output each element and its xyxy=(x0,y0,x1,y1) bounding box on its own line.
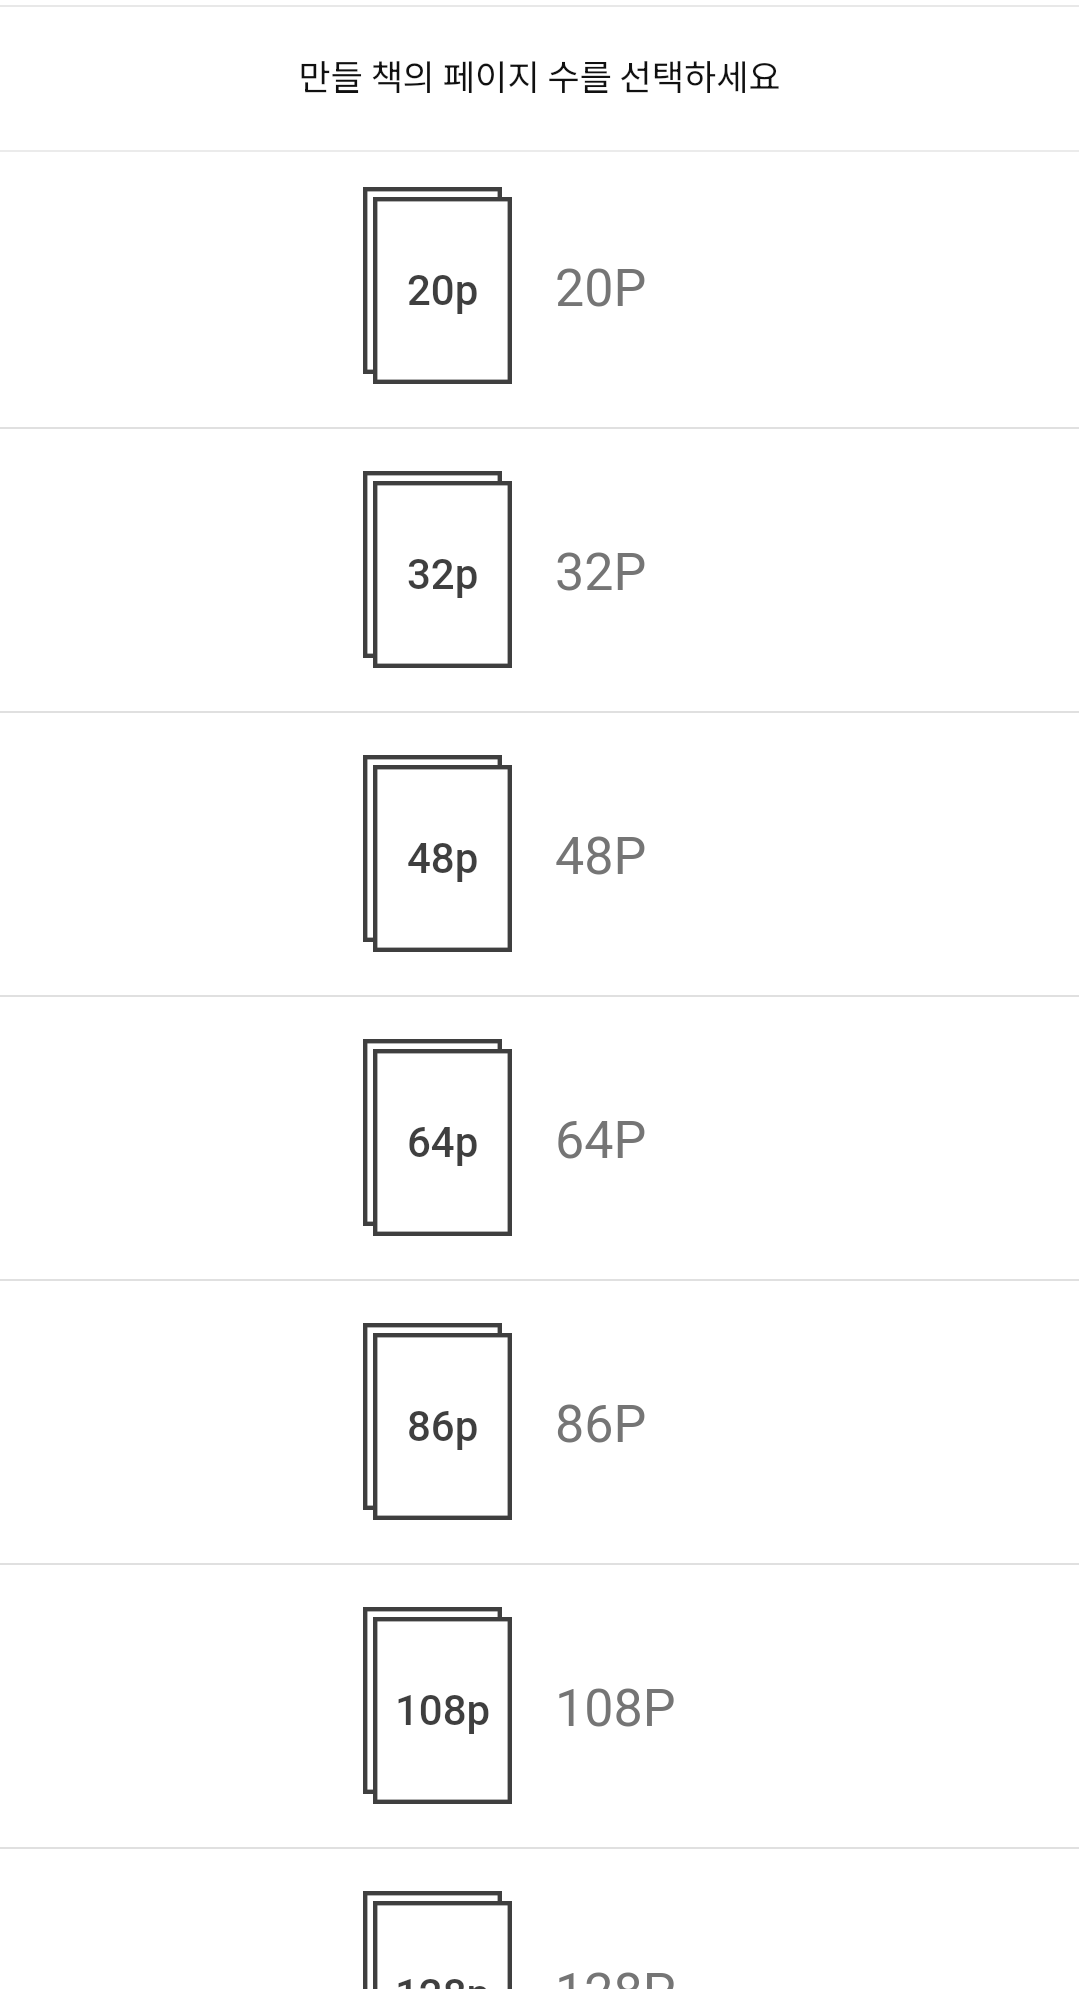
button[interactable]: 64페이지 책 선택 xyxy=(0,997,1079,1279)
button[interactable]: 48페이지 책 선택 xyxy=(0,713,1079,995)
button[interactable]: 32페이지 책 선택 xyxy=(0,429,1079,711)
staticText: 108P xyxy=(555,1678,676,1739)
staticText: 108p xyxy=(395,1686,491,1735)
staticText: 86P xyxy=(555,1394,647,1455)
button[interactable]: 86페이지 책 선택 xyxy=(0,1281,1079,1563)
staticText: 32P xyxy=(555,542,647,603)
staticText: 20p xyxy=(407,266,479,315)
staticText: 20P xyxy=(555,258,647,319)
button[interactable]: 128페이지 책 선택 xyxy=(0,1849,1079,1989)
staticText: 86p xyxy=(407,1402,479,1451)
staticText: 48P xyxy=(555,826,647,887)
staticText: 128P xyxy=(555,1962,676,1989)
staticText: 128p xyxy=(395,1970,491,1989)
staticText: 48p xyxy=(407,834,479,883)
button[interactable]: 20페이지 책 선택 xyxy=(0,145,1079,427)
staticText: 만들 책의 페이지 수를 선택하세요 xyxy=(298,49,781,100)
staticText: 64p xyxy=(407,1118,479,1167)
button[interactable]: 108페이지 책 선택 xyxy=(0,1565,1079,1847)
staticText: 64P xyxy=(555,1110,647,1171)
staticText: 32p xyxy=(407,550,479,599)
